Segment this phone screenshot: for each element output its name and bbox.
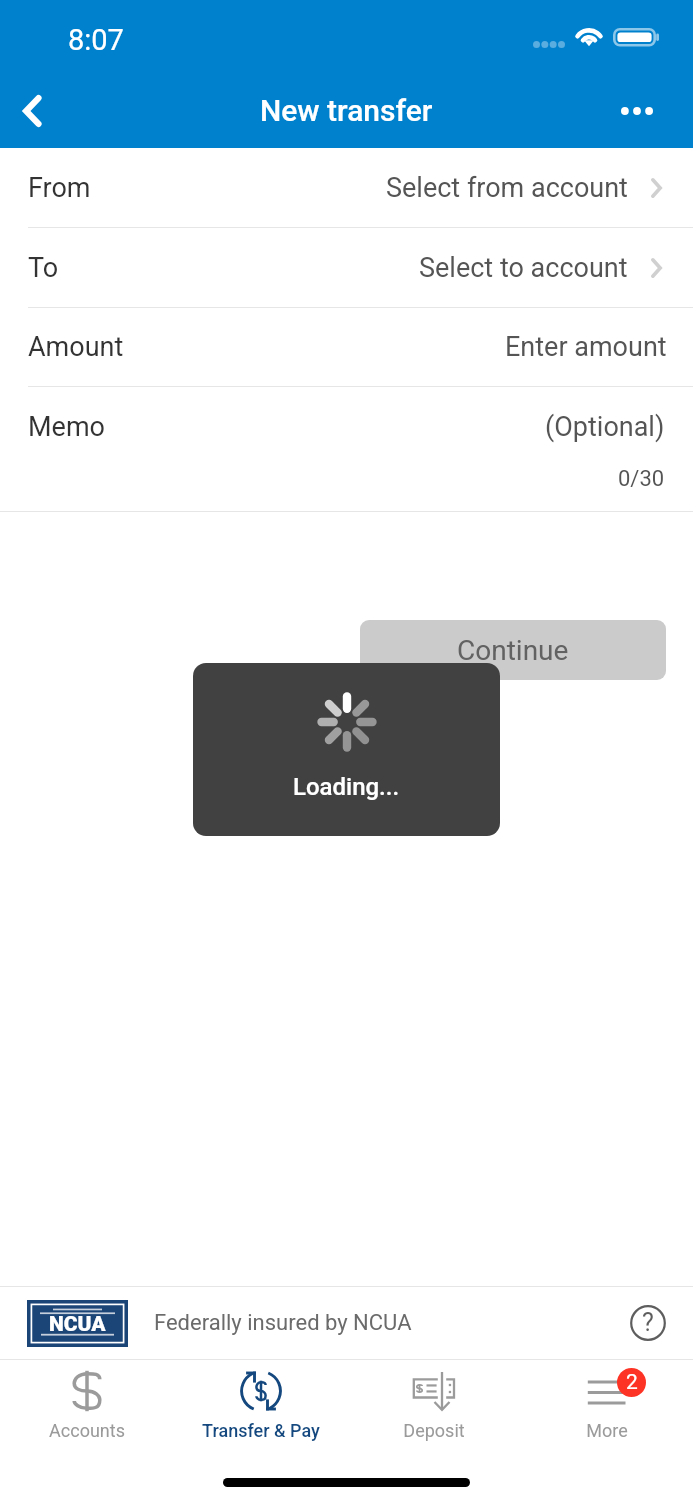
button[interactable]: Back — [0, 74, 64, 148]
button[interactable]: More options — [601, 74, 671, 148]
staticText: Transfer & Pay — [202, 1420, 320, 1441]
staticText: Enter amount — [505, 331, 667, 363]
staticText: ? — [642, 1308, 654, 1337]
staticText: To — [28, 252, 59, 284]
staticText: Loading... — [293, 773, 400, 801]
staticText: Select from account — [386, 172, 628, 204]
button[interactable]: Accounts — [0, 1360, 174, 1464]
staticText: 0/30 — [618, 466, 665, 492]
button[interactable]: Deposit — [347, 1360, 520, 1464]
staticText: 2 — [626, 1370, 638, 1395]
staticText: Continue — [457, 634, 569, 667]
button[interactable]: Help — [626, 1301, 670, 1345]
staticText: 8:07 — [68, 23, 124, 57]
staticText: Deposit — [403, 1420, 465, 1441]
staticText: More — [586, 1420, 628, 1441]
staticText: New transfer — [260, 93, 433, 128]
button[interactable]: Continue — [360, 620, 666, 680]
button[interactable]: Transfer & Pay — [174, 1360, 347, 1464]
staticText: Federally insured by NCUA — [154, 1310, 412, 1336]
staticText: Amount — [28, 331, 124, 363]
staticText: From — [28, 172, 91, 204]
staticText: Accounts — [49, 1420, 125, 1441]
staticText: Select to account — [419, 252, 628, 284]
button[interactable]: To — [0, 228, 693, 307]
button[interactable]: Memo — [0, 387, 693, 511]
staticText: NCUA — [49, 1312, 106, 1337]
staticText: Memo — [28, 411, 105, 443]
button[interactable]: 2 — [520, 1360, 693, 1464]
button[interactable]: Amount — [0, 308, 693, 386]
button[interactable]: From — [0, 148, 693, 227]
staticText: (Optional) — [545, 411, 665, 443]
